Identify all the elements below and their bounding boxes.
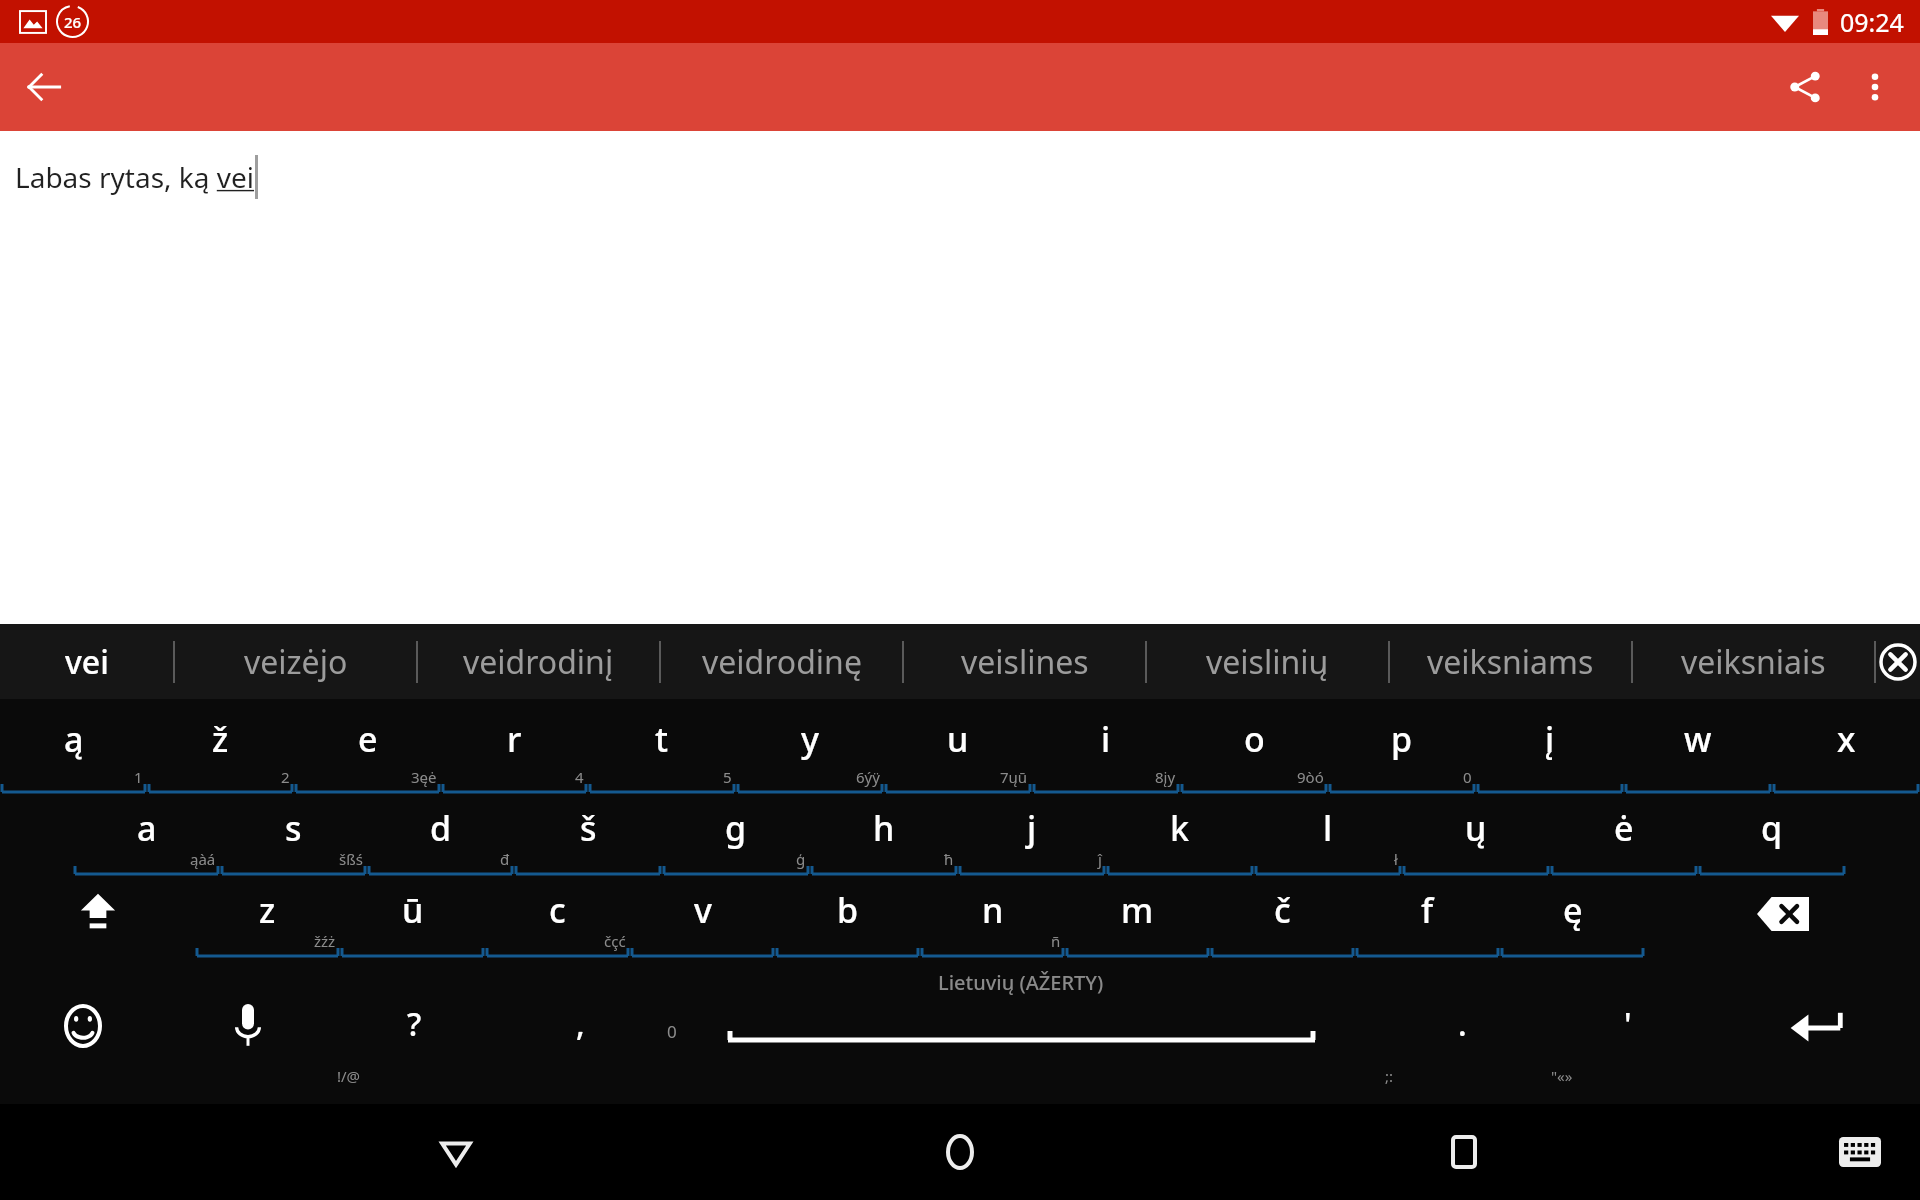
button[interactable]: c — [485, 877, 630, 959]
button[interactable]: i — [1032, 699, 1180, 795]
staticText: 26 — [64, 12, 82, 32]
button[interactable]: Back — [12, 55, 76, 119]
staticText: c — [549, 887, 566, 933]
button[interactable]: Share — [1770, 52, 1840, 122]
button[interactable]: p — [1328, 699, 1476, 795]
staticText: k — [1170, 805, 1190, 851]
staticText: p — [1391, 716, 1413, 762]
staticText: 5 — [723, 767, 732, 787]
button[interactable]: į — [1476, 699, 1624, 795]
staticText: n — [982, 887, 1004, 933]
button[interactable]: veidrodinę — [661, 624, 902, 699]
button[interactable]: g — [662, 795, 810, 877]
button[interactable]: , — [497, 959, 663, 1104]
button[interactable]: b — [775, 877, 920, 959]
button[interactable]: s — [220, 795, 367, 877]
button[interactable]: š — [514, 795, 662, 877]
staticText: žźż — [314, 931, 336, 951]
button[interactable]: Voice input — [165, 959, 331, 1104]
button[interactable]: ū — [340, 877, 485, 959]
staticText: i — [1101, 716, 1111, 762]
button[interactable]: veiksniais — [1633, 624, 1874, 699]
staticText: q — [1761, 805, 1783, 851]
staticText: 4 — [575, 767, 584, 787]
staticText: . — [1458, 1002, 1467, 1046]
staticText: f — [1421, 887, 1434, 933]
button[interactable]: More options — [1840, 52, 1910, 122]
staticText: ę — [1563, 887, 1583, 933]
staticText: m — [1121, 887, 1154, 933]
staticText: a — [137, 805, 157, 851]
staticText: ' — [1624, 1002, 1632, 1046]
button[interactable]: u — [884, 699, 1032, 795]
button[interactable]: q — [1698, 795, 1846, 877]
button[interactable]: w — [1624, 699, 1772, 795]
staticText: e — [358, 716, 378, 762]
button[interactable]: d — [367, 795, 514, 877]
staticText: ą — [64, 716, 84, 762]
button[interactable]: veizėjo — [175, 624, 416, 699]
staticText: "«» — [1551, 1066, 1573, 1086]
button[interactable]: ' — [1545, 959, 1711, 1104]
button[interactable]: veidrodinį — [418, 624, 659, 699]
button[interactable]: v — [630, 877, 775, 959]
button[interactable]: ? — [331, 959, 497, 1104]
button[interactable]: f — [1355, 877, 1500, 959]
button[interactable]: h — [810, 795, 958, 877]
button[interactable]: Home — [912, 1104, 1008, 1200]
staticText: x — [1837, 716, 1856, 762]
staticText: į — [1545, 716, 1555, 762]
button[interactable]: m — [1065, 877, 1210, 959]
staticText: l — [1323, 805, 1333, 851]
button[interactable]: . — [1379, 959, 1545, 1104]
staticText: ė — [1614, 805, 1634, 851]
staticText: 0 — [667, 1020, 677, 1043]
button[interactable]: ę — [1500, 877, 1645, 959]
button[interactable]: Enter — [1711, 959, 1920, 1104]
button[interactable]: Switch keyboard — [1830, 1122, 1890, 1182]
button[interactable]: ė — [1550, 795, 1698, 877]
staticText: čçć — [604, 931, 626, 951]
button[interactable]: veiksniams — [1390, 624, 1631, 699]
staticText: ž — [212, 716, 229, 762]
staticText: h — [873, 805, 895, 851]
button[interactable]: Shift — [0, 877, 195, 959]
button[interactable]: ą — [0, 699, 147, 795]
button[interactable]: z — [195, 877, 340, 959]
button[interactable]: vei — [0, 624, 173, 699]
button[interactable]: Backspace — [1645, 877, 1920, 959]
button[interactable]: j — [958, 795, 1106, 877]
button[interactable]: veislinių — [1147, 624, 1388, 699]
staticText: 7ųū — [1000, 767, 1028, 787]
button[interactable]: k — [1106, 795, 1254, 877]
button[interactable]: č — [1210, 877, 1355, 959]
staticText: g — [725, 805, 747, 851]
button[interactable]: veislines — [904, 624, 1145, 699]
staticText: ħ — [944, 849, 954, 869]
button[interactable]: Back — [408, 1104, 504, 1200]
button[interactable]: Emoji — [0, 959, 165, 1104]
button[interactable]: e — [294, 699, 441, 795]
staticText: ł — [1394, 849, 1398, 869]
button[interactable]: ų — [1402, 795, 1550, 877]
staticText: veiksniams — [1427, 640, 1594, 684]
button[interactable]: n — [920, 877, 1065, 959]
button[interactable]: Clear suggestions — [1876, 624, 1920, 699]
button[interactable]: x — [1772, 699, 1920, 795]
staticText: Lietuvių (AŽERTY) — [938, 969, 1104, 996]
staticText: j — [1027, 805, 1037, 851]
staticText: Labas rytas, ką vei — [15, 158, 255, 196]
button[interactable]: a — [73, 795, 220, 877]
button[interactable]: Lietuvių (AŽERTY) — [663, 959, 1379, 1104]
button[interactable]: y — [736, 699, 884, 795]
button[interactable]: o — [1180, 699, 1328, 795]
button[interactable]: r — [441, 699, 588, 795]
button[interactable]: l — [1254, 795, 1402, 877]
button[interactable]: Recent apps — [1416, 1104, 1512, 1200]
staticText: 2 — [281, 767, 290, 787]
staticText: veizėjo — [244, 640, 348, 684]
staticText: veidrodinę — [702, 640, 862, 684]
button[interactable]: t — [588, 699, 736, 795]
staticText: !/@ — [337, 1066, 361, 1086]
button[interactable]: ž — [147, 699, 294, 795]
